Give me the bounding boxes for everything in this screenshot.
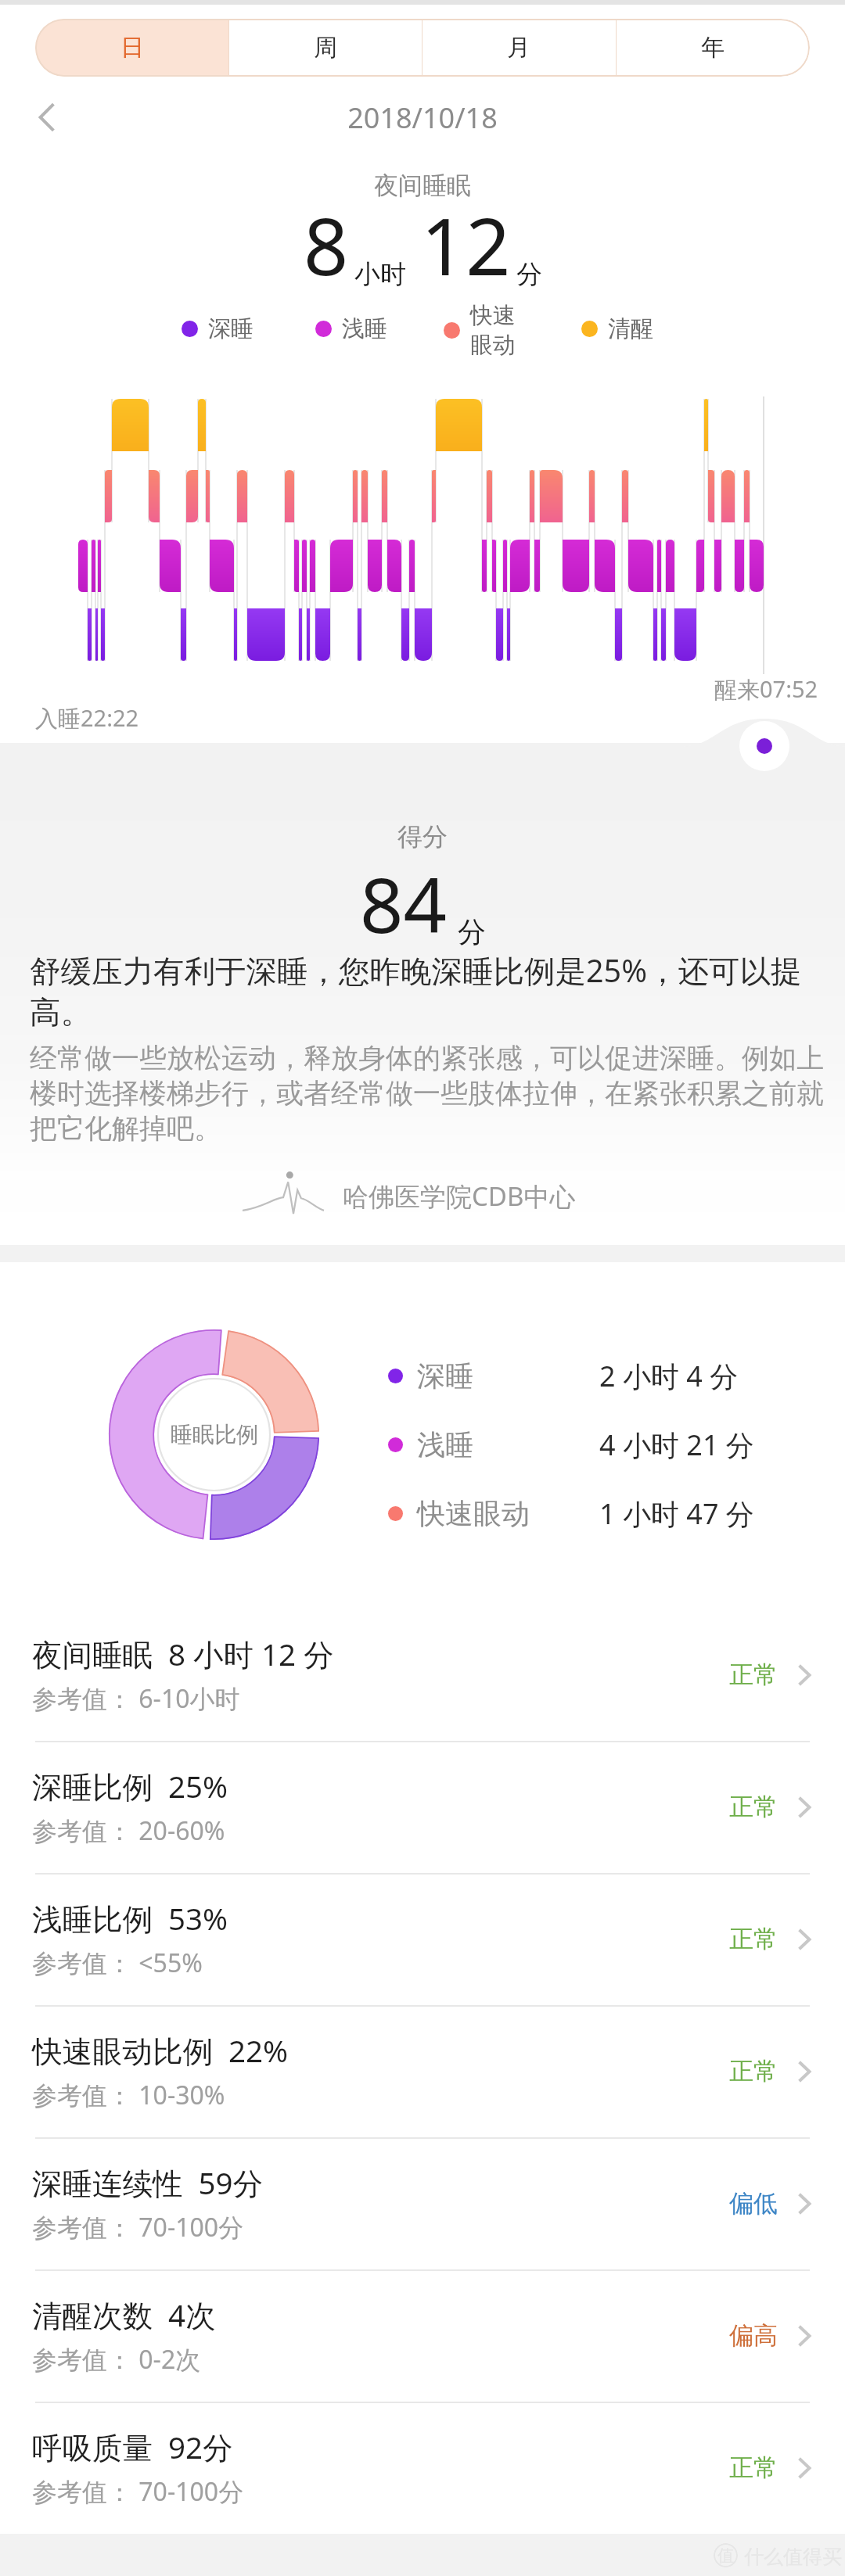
staticText: 浅睡比例 53% xyxy=(32,1898,228,1939)
staticText: 84 xyxy=(360,852,447,955)
button[interactable]: 周 xyxy=(228,19,422,77)
staticText: 正常 xyxy=(729,2452,778,2483)
button[interactable]: Previous day xyxy=(17,88,77,147)
staticText: 清醒次数 4次 xyxy=(32,2294,216,2336)
staticText: 什么值得买 xyxy=(744,2545,842,2569)
button[interactable]: 月 xyxy=(422,19,616,77)
staticText: 深睡 xyxy=(208,314,253,343)
staticText: 分 xyxy=(516,258,542,291)
button[interactable]: 深睡连续性 59分 xyxy=(0,2137,845,2269)
staticText: 偏高 xyxy=(729,2320,778,2351)
staticText: 值 xyxy=(717,2546,734,2566)
staticText: 年 xyxy=(701,33,725,63)
staticText: 入睡22:22 xyxy=(35,702,139,734)
staticText: 深睡比例 25% xyxy=(32,1766,228,1807)
staticText: 8 xyxy=(304,192,349,298)
staticText: 正常 xyxy=(729,1659,778,1690)
staticText: 正常 xyxy=(729,2056,778,2086)
staticText: 参考值： 6-10小时 xyxy=(32,1681,240,1716)
staticText: 参考值： 10-30% xyxy=(32,2078,225,2112)
staticText: 偏低 xyxy=(729,2188,778,2219)
staticText: 哈佛医学院CDB中心 xyxy=(343,1179,576,1214)
button[interactable]: 夜间睡眠 8 小时 12 分 xyxy=(0,1609,845,1741)
staticText: 深睡连续性 59分 xyxy=(32,2162,264,2204)
staticText: 舒缓压力有利于深睡，您昨晚深睡比例是25%，还可以提高。 xyxy=(30,949,828,1032)
staticText: 得分 xyxy=(0,821,845,852)
staticText: 参考值： 20-60% xyxy=(32,1814,225,1848)
staticText: 快速眼动 xyxy=(417,1496,530,1531)
button[interactable]: 快速眼动比例 22% xyxy=(0,2005,845,2137)
button[interactable]: 年 xyxy=(616,19,810,77)
staticText: 参考值： 0-2次 xyxy=(32,2342,201,2377)
button[interactable]: 呼吸质量 92分 xyxy=(0,2402,845,2534)
button[interactable]: 浅睡比例 53% xyxy=(0,1873,845,2005)
staticText: 日 xyxy=(120,33,144,63)
staticText: 呼吸质量 92分 xyxy=(32,2427,233,2468)
staticText: 2018/10/18 xyxy=(0,99,845,137)
staticText: 快速 眼动 xyxy=(470,301,516,360)
button[interactable]: 日 xyxy=(35,19,228,77)
button[interactable]: 清醒次数 4次 xyxy=(0,2269,845,2402)
staticText: 1 小时 47 分 xyxy=(599,1494,754,1533)
staticText: 浅睡 xyxy=(417,1427,473,1462)
staticText: 浅睡 xyxy=(342,314,387,343)
staticText: 参考值： <55% xyxy=(32,1946,203,1980)
staticText: 正常 xyxy=(729,1924,778,1954)
staticText: 参考值： 70-100分 xyxy=(32,2474,244,2509)
staticText: 周 xyxy=(314,33,337,63)
staticText: 月 xyxy=(507,33,530,63)
staticText: 睡眠比例 xyxy=(171,1421,258,1448)
staticText: 分 xyxy=(458,914,486,949)
staticText: 参考值： 70-100分 xyxy=(32,2210,244,2244)
staticText: 快速眼动比例 22% xyxy=(32,2030,289,2072)
staticText: 2 小时 4 分 xyxy=(599,1357,739,1395)
button[interactable]: 深睡比例 25% xyxy=(0,1741,845,1873)
staticText: 12 xyxy=(421,192,511,298)
staticText: 4 小时 21 分 xyxy=(599,1426,754,1464)
staticText: 夜间睡眠 xyxy=(0,170,845,201)
staticText: 小时 xyxy=(354,258,406,291)
staticText: 经常做一些放松运动，释放身体的紧张感，可以促进深睡。例如上楼时选择楼梯步行，或者… xyxy=(30,1041,834,1146)
staticText: 正常 xyxy=(729,1792,778,1822)
staticText: 醒来07:52 xyxy=(714,673,818,705)
staticText: 夜间睡眠 8 小时 12 分 xyxy=(32,1634,334,1675)
staticText: 深睡 xyxy=(417,1358,473,1394)
staticText: 清醒 xyxy=(608,314,653,343)
